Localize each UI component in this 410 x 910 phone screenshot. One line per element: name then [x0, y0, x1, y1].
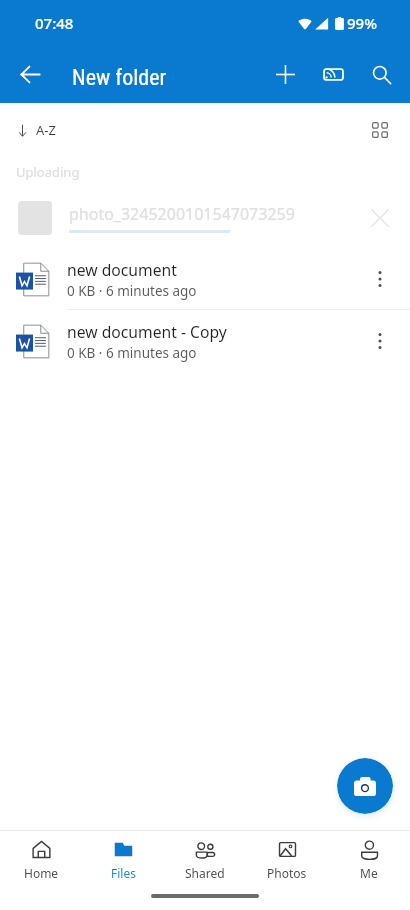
- button[interactable]: More options: [356, 255, 404, 303]
- button[interactable]: Add: [261, 50, 309, 98]
- button[interactable]: Me: [328, 831, 410, 881]
- button[interactable]: new document - Copy: [0, 310, 410, 372]
- staticText: 07:48: [35, 13, 74, 33]
- button[interactable]: Files: [82, 831, 164, 881]
- button[interactable]: photo_3245200101547073259: [0, 187, 410, 249]
- staticText: Photos: [267, 865, 307, 881]
- button[interactable]: Cancel upload: [356, 194, 404, 242]
- staticText: Shared: [185, 865, 225, 881]
- button[interactable]: A-Z: [8, 115, 64, 145]
- staticText: 0 KB · 6 minutes ago: [67, 344, 197, 362]
- staticText: Home: [24, 865, 59, 881]
- staticText: 99%: [347, 13, 377, 33]
- button[interactable]: Shared: [164, 831, 246, 881]
- staticText: Me: [360, 865, 378, 881]
- button[interactable]: Photos: [246, 831, 328, 881]
- button[interactable]: Take a photo: [337, 758, 393, 814]
- staticText: new document: [67, 259, 177, 280]
- staticText: A-Z: [36, 121, 56, 139]
- button[interactable]: new document: [0, 249, 410, 309]
- staticText: 0 KB · 6 minutes ago: [67, 282, 197, 300]
- button[interactable]: Search: [357, 50, 405, 98]
- staticText: Files: [111, 865, 136, 881]
- staticText: Uploading: [16, 163, 80, 181]
- button[interactable]: Back: [6, 50, 54, 98]
- button[interactable]: More options: [356, 317, 404, 365]
- staticText: new document - Copy: [67, 321, 227, 342]
- button[interactable]: Switch to grid view: [356, 106, 404, 154]
- staticText: photo_3245200101547073259: [69, 203, 295, 225]
- staticText: New folder: [72, 65, 167, 91]
- button[interactable]: Cast: [309, 50, 357, 98]
- button[interactable]: Home: [0, 831, 82, 881]
